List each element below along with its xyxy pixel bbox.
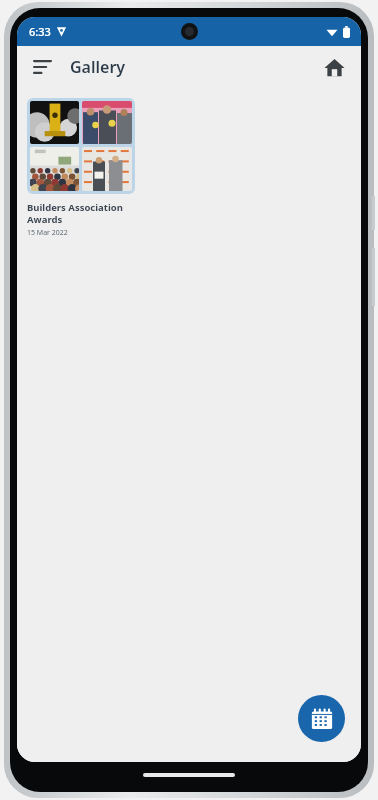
button[interactable]: Open navigation menu [23, 48, 61, 86]
staticText: Gallery [70, 56, 126, 78]
button[interactable]: Calendar [298, 695, 345, 742]
button[interactable]: Builders Association Awards [27, 98, 135, 238]
staticText: 6:33 [29, 24, 51, 39]
staticText: 15 Mar 2022 [27, 228, 68, 238]
button[interactable]: Home [315, 48, 353, 86]
staticText: Builders Association Awards [27, 201, 135, 226]
